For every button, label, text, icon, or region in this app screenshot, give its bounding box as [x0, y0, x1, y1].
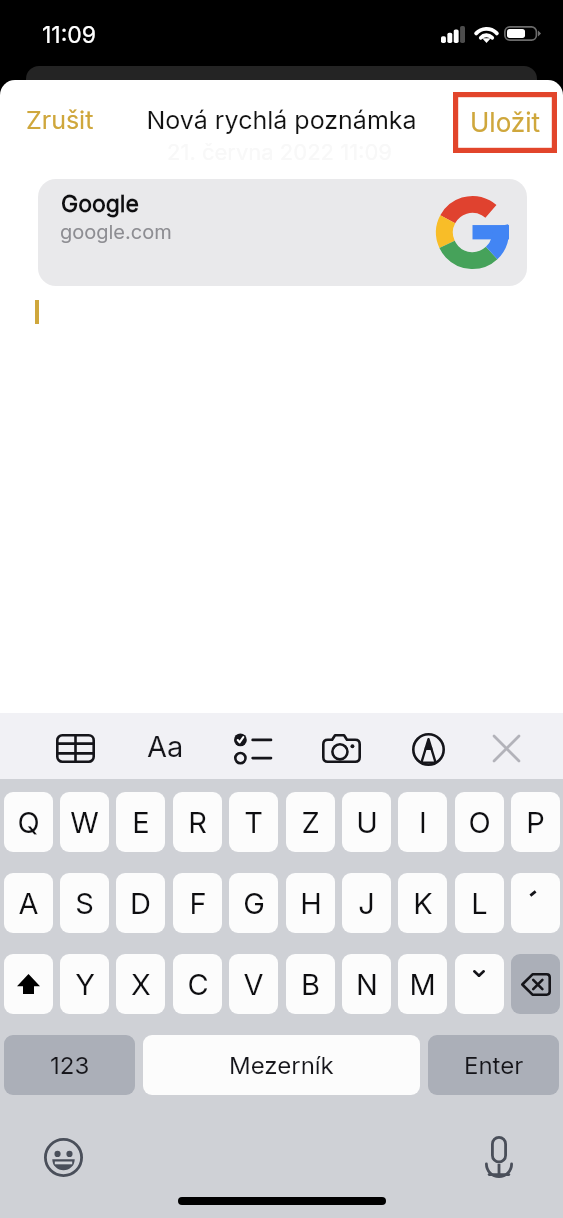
staticText: O: [468, 805, 491, 840]
button[interactable]: I: [398, 792, 447, 852]
button[interactable]: Checklist: [228, 727, 277, 771]
staticText: Uložit: [470, 107, 541, 138]
button[interactable]: [511, 873, 560, 933]
button[interactable]: Google: [38, 179, 527, 286]
button[interactable]: Zrušit: [14, 95, 106, 145]
staticText: L: [471, 886, 488, 921]
staticText: Enter: [464, 1051, 524, 1080]
button[interactable]: Uložit: [453, 92, 557, 153]
staticText: Zrušit: [26, 105, 94, 135]
button[interactable]: K: [398, 873, 447, 933]
button[interactable]: Shift: [4, 954, 53, 1014]
button[interactable]: W: [60, 792, 109, 852]
button[interactable]: Emoji: [39, 1133, 87, 1181]
staticText: M: [409, 967, 436, 1002]
button[interactable]: J: [342, 873, 391, 933]
button[interactable]: V: [229, 954, 278, 1014]
button[interactable]: G: [229, 873, 278, 933]
staticText: A: [18, 886, 39, 921]
button[interactable]: R: [173, 792, 222, 852]
staticText: W: [70, 805, 99, 840]
button[interactable]: Text format: [140, 721, 190, 771]
button[interactable]: O: [455, 792, 504, 852]
button[interactable]: T: [229, 792, 278, 852]
button[interactable]: Caron: [455, 954, 504, 1014]
staticText: 11:09: [42, 21, 97, 49]
staticText: S: [75, 886, 94, 921]
button[interactable]: A: [4, 873, 53, 933]
staticText: Mezerník: [229, 1051, 334, 1080]
staticText: F: [189, 886, 207, 921]
staticText: D: [130, 886, 151, 921]
button[interactable]: S: [60, 873, 109, 933]
button[interactable]: D: [116, 873, 165, 933]
staticText: V: [243, 967, 264, 1002]
staticText: U: [356, 805, 378, 840]
staticText: google.com: [60, 220, 172, 244]
staticText: J: [358, 886, 375, 921]
staticText: I: [419, 805, 427, 840]
button[interactable]: Q: [4, 792, 53, 852]
button[interactable]: 123: [4, 1035, 135, 1095]
staticText: P: [526, 805, 545, 840]
staticText: C: [187, 967, 209, 1002]
button[interactable]: U: [342, 792, 391, 852]
staticText: X: [131, 967, 151, 1002]
staticText: Aa: [147, 729, 184, 764]
staticText: Q: [17, 805, 40, 840]
staticText: 21. června 2022 11:09: [0, 139, 561, 166]
button[interactable]: Mezerník: [143, 1035, 420, 1095]
staticText: Z: [301, 805, 320, 840]
staticText: B: [301, 967, 320, 1002]
button[interactable]: Table: [50, 728, 101, 769]
staticText: H: [300, 886, 322, 921]
button[interactable]: Camera: [316, 728, 367, 769]
button[interactable]: B: [286, 954, 335, 1014]
button[interactable]: Enter: [428, 1035, 559, 1095]
button[interactable]: Dictate: [479, 1136, 519, 1176]
button[interactable]: Y: [60, 954, 109, 1014]
staticText: T: [244, 805, 263, 840]
staticText: E: [132, 805, 150, 840]
staticText: Nová rychlá poznámka: [0, 105, 563, 135]
staticText: Google: [61, 190, 139, 218]
button[interactable]: C: [173, 954, 222, 1014]
staticText: K: [413, 886, 433, 921]
button[interactable]: M: [398, 954, 447, 1014]
button[interactable]: L: [455, 873, 504, 933]
button[interactable]: F: [173, 873, 222, 933]
staticText: 123: [50, 1051, 90, 1080]
staticText: N: [356, 967, 378, 1002]
button[interactable]: Markup: [406, 727, 451, 772]
button[interactable]: N: [342, 954, 391, 1014]
staticText: Y: [75, 967, 95, 1002]
button[interactable]: Close: [488, 730, 525, 767]
button[interactable]: X: [116, 954, 165, 1014]
button[interactable]: Backspace: [511, 954, 560, 1014]
button[interactable]: P: [511, 792, 560, 852]
button[interactable]: E: [116, 792, 165, 852]
button[interactable]: H: [286, 873, 335, 933]
button[interactable]: Z: [286, 792, 335, 852]
staticText: R: [188, 805, 207, 840]
staticText: G: [243, 886, 265, 921]
